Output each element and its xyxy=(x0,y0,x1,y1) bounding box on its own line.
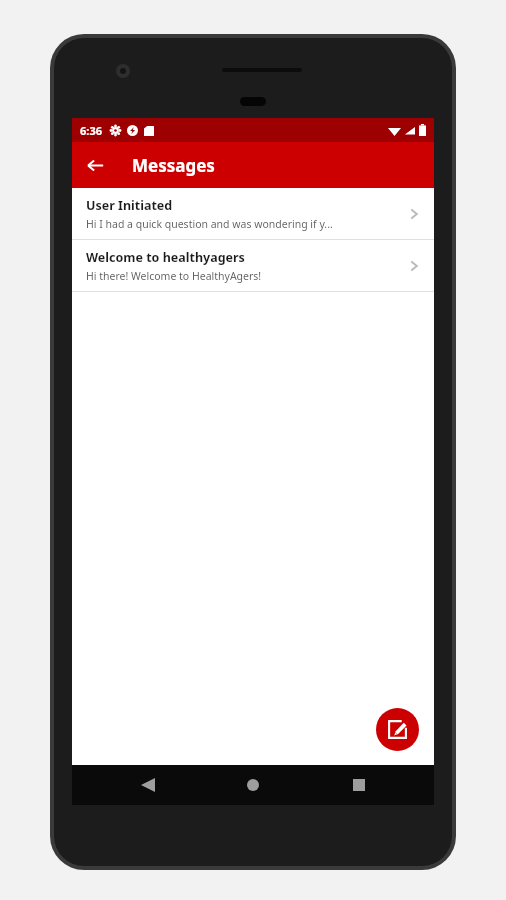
button[interactable]: Welcome to healthyagers xyxy=(72,240,434,291)
staticText: Messages xyxy=(132,154,215,177)
staticText: 6:36 xyxy=(80,123,102,138)
button[interactable]: Home xyxy=(223,765,283,805)
button[interactable]: Back xyxy=(72,142,118,188)
staticText: Hi there! Welcome to HealthyAgers! xyxy=(86,269,262,283)
button[interactable]: Recent apps xyxy=(329,765,389,805)
button[interactable]: Back xyxy=(118,765,178,805)
staticText: Welcome to healthyagers xyxy=(86,249,245,266)
staticText: User Initiated xyxy=(86,197,173,214)
staticText: Hi I had a quick question and was wonder… xyxy=(86,217,333,231)
button[interactable]: Compose new message xyxy=(376,708,419,751)
button[interactable]: User Initiated xyxy=(72,188,434,239)
